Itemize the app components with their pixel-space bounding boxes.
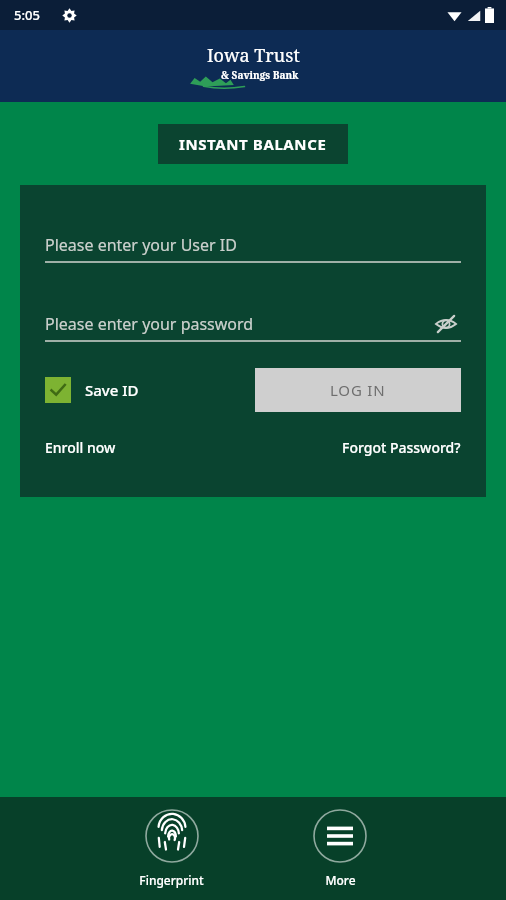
staticText: Fingerprint	[139, 872, 204, 888]
button[interactable]: Fingerprint login	[133, 805, 210, 892]
staticText: Save ID	[85, 380, 139, 400]
button[interactable]: Save ID	[45, 377, 139, 403]
button[interactable]: Enroll now	[45, 434, 116, 461]
staticText: INSTANT BALANCE	[179, 134, 327, 154]
button[interactable]: Forgot Password?	[342, 434, 461, 461]
button[interactable]: INSTANT BALANCE	[158, 124, 348, 164]
staticText: Please enter your password	[45, 313, 254, 335]
button[interactable]: Show password	[431, 309, 461, 339]
staticText: 5:05	[14, 6, 40, 24]
staticText: Iowa Trust	[207, 43, 300, 68]
staticText: Please enter your User ID	[45, 234, 237, 256]
staticText: Forgot Password?	[342, 438, 461, 457]
staticText: & Savings Bank	[221, 68, 299, 82]
staticText: More	[325, 872, 356, 888]
button[interactable]: Please enter your password	[45, 308, 461, 340]
button[interactable]: More options	[307, 805, 373, 892]
button[interactable]: LOG IN	[255, 368, 461, 412]
staticText: Enroll now	[45, 438, 116, 457]
button[interactable]: Please enter your User ID	[45, 229, 461, 261]
staticText: LOG IN	[330, 380, 386, 400]
